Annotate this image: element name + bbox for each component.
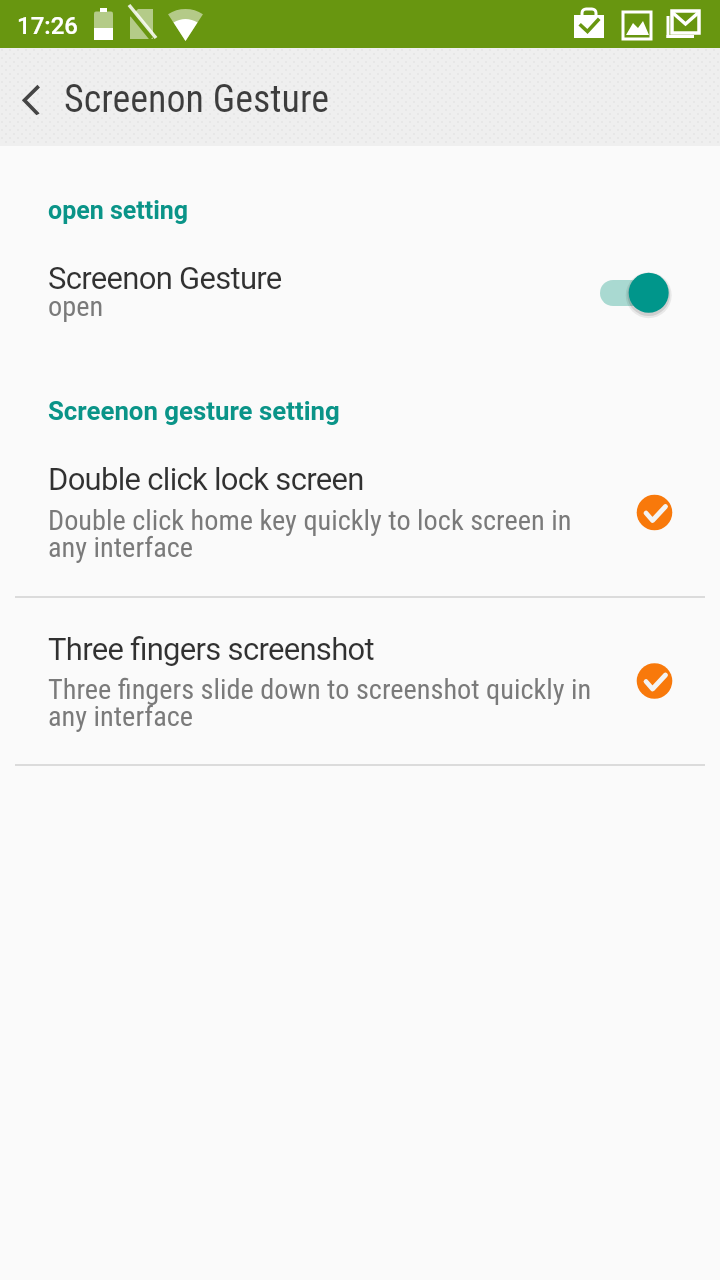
staticText: any interface [48,531,194,564]
button[interactable] [8,77,48,117]
staticText: any interface [48,700,194,733]
button[interactable]: Double click lock screen [0,452,720,596]
staticText: open setting [48,196,189,225]
staticText: Three fingers slide down to screenshot q… [48,673,592,706]
staticText: Double click home key quickly to lock sc… [48,504,572,537]
button[interactable]: Three fingers screenshot [0,620,720,764]
staticText: Screenon gesture setting [48,396,340,426]
staticText: open [48,290,104,323]
staticText: Double click lock screen [48,461,364,497]
staticText: Screenon Gesture [48,260,282,296]
staticText: 17:26 [17,12,78,40]
button[interactable]: Screenon Gesture [0,248,720,340]
staticText: Three fingers screenshot [48,631,374,667]
staticText: Screenon Gesture [64,77,329,122]
